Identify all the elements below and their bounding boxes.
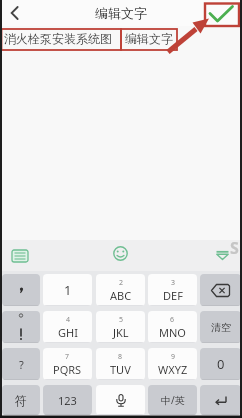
staticText: GHI — [58, 325, 78, 340]
staticText: DEF — [163, 288, 183, 303]
staticText: 6 — [170, 315, 175, 325]
staticText: 1 — [64, 281, 72, 299]
staticText: 8 — [118, 352, 123, 362]
staticText: 2 — [119, 278, 124, 288]
staticText: 123 — [58, 393, 77, 408]
staticText: ABC — [110, 288, 132, 303]
button[interactable] — [2, 311, 40, 343]
staticText: 7 — [65, 352, 70, 362]
button[interactable] — [106, 241, 134, 265]
staticText: 中/英 — [161, 393, 185, 407]
button[interactable] — [204, 0, 242, 26]
button[interactable] — [2, 274, 40, 306]
button[interactable]: 3 — [148, 274, 197, 306]
button[interactable]: 2 — [96, 274, 145, 306]
staticText: 清空 — [211, 321, 231, 334]
button[interactable]: 7 — [43, 348, 92, 380]
button[interactable]: 中/英 — [148, 385, 197, 415]
staticText: JKL — [113, 325, 129, 340]
button[interactable]: 1 — [43, 274, 92, 306]
button[interactable]: ? — [2, 348, 40, 380]
staticText: 4 — [66, 315, 71, 325]
staticText: 0 — [217, 355, 225, 373]
staticText: WXYZ — [158, 362, 188, 377]
button[interactable] — [6, 244, 34, 268]
button[interactable]: 9 — [148, 348, 197, 380]
staticText: 编辑文字 — [95, 5, 147, 21]
staticText: 消火栓泵安装系统图 — [4, 31, 112, 46]
staticText: 编辑文字 — [125, 31, 173, 46]
staticText: 9 — [171, 352, 176, 362]
staticText: 5 — [119, 315, 124, 325]
button[interactable]: 6 — [148, 311, 197, 343]
button[interactable]: 0 — [200, 348, 241, 380]
button[interactable] — [96, 385, 145, 415]
button[interactable] — [0, 0, 30, 26]
button[interactable] — [200, 274, 241, 306]
staticText: MNO — [159, 325, 186, 340]
button[interactable]: 5 — [96, 311, 145, 343]
button[interactable]: 符 — [2, 385, 40, 415]
button[interactable]: 8 — [96, 348, 145, 380]
button[interactable]: 123 — [43, 385, 92, 415]
button[interactable]: 清空 — [200, 311, 241, 343]
staticText: ? — [19, 357, 24, 372]
staticText: TUV — [110, 362, 131, 377]
button[interactable]: 4 — [43, 311, 92, 343]
staticText: 符 — [15, 393, 27, 408]
staticText: S — [230, 237, 239, 259]
staticText: PQRS — [53, 362, 82, 377]
button[interactable] — [208, 244, 236, 266]
button[interactable] — [1, 28, 178, 51]
staticText: 3 — [171, 278, 176, 288]
button[interactable] — [200, 385, 241, 415]
